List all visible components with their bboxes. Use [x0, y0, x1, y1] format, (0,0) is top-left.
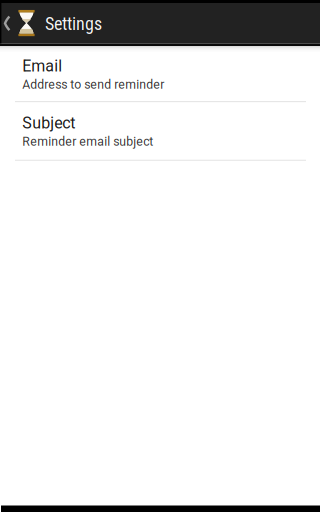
- staticText: Reminder email subject: [22, 134, 153, 149]
- staticText: Settings: [45, 13, 102, 34]
- staticText: Email: [22, 57, 62, 75]
- button[interactable]: Email: [0, 46, 320, 101]
- staticText: Address to send reminder: [22, 77, 164, 92]
- button[interactable]: Subject: [0, 102, 320, 160]
- button[interactable]: Back: [0, 3, 39, 43]
- staticText: Subject: [22, 114, 75, 132]
